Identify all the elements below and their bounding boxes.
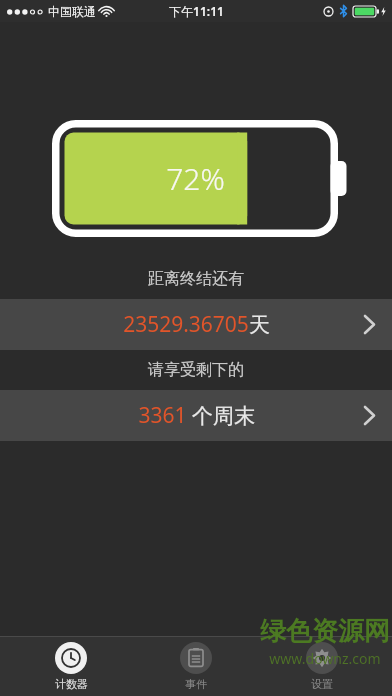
button[interactable]: 3361 (0, 390, 392, 441)
button[interactable]: 23529.36705 (0, 299, 392, 350)
staticText: 23529.36705 (123, 310, 249, 339)
staticText: 下午11:11 (169, 3, 224, 19)
staticText: 请享受剩下的 (148, 360, 244, 380)
staticText: 天 (249, 312, 270, 338)
staticText: 距离终结还有 (148, 269, 244, 289)
staticText: 72% (166, 158, 225, 199)
staticText: www.downz.com (269, 649, 381, 668)
button[interactable]: 事件 (141, 638, 251, 695)
button[interactable]: 设置 (267, 638, 377, 695)
staticText: 事件 (185, 677, 207, 691)
staticText: 3361 (138, 401, 187, 430)
button[interactable]: 计数器 (16, 638, 126, 695)
staticText: 个周末 (192, 403, 255, 429)
staticText: 中国联通 (48, 4, 96, 19)
staticText: 计数器 (55, 677, 88, 691)
staticText: 设置 (311, 677, 333, 691)
staticText: 绿色资源网 (260, 615, 390, 648)
